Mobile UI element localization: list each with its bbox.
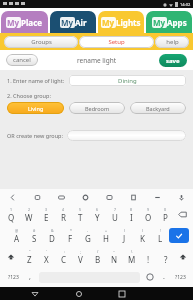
button[interactable]: 8 <box>123 204 140 225</box>
staticText: 4 <box>62 207 65 212</box>
button[interactable]: Setup <box>79 36 154 48</box>
staticText: M <box>128 254 136 265</box>
button[interactable]: Shift <box>174 246 191 267</box>
staticText: Dining <box>118 77 137 85</box>
staticText: B <box>95 254 101 265</box>
staticText: E <box>44 212 49 223</box>
button[interactable]: Comma <box>23 267 37 287</box>
button[interactable]: Settings <box>79 191 91 203</box>
staticText: " <box>29 249 31 254</box>
button[interactable]: 0 <box>157 204 174 225</box>
button[interactable]: ?123 <box>170 267 190 287</box>
staticText: OR create new group: <box>7 132 63 139</box>
button[interactable]: @ <box>8 225 25 246</box>
button[interactable]: Home <box>71 287 87 300</box>
staticText: 3 <box>45 207 48 212</box>
button[interactable]: + <box>97 225 115 246</box>
staticText: 0 <box>164 207 167 212</box>
button[interactable]: - <box>79 225 97 246</box>
button[interactable]: Enter <box>169 228 189 243</box>
staticText: 1. Enter name of light: <box>7 77 65 84</box>
button[interactable]: Back <box>6 191 18 203</box>
staticText: Setup <box>108 38 125 46</box>
button[interactable]: 1 <box>2 204 20 225</box>
staticText: ; <box>80 249 81 254</box>
staticText: 2 <box>28 207 31 212</box>
button[interactable]: More <box>151 191 163 203</box>
staticText: 2. Choose group: <box>7 92 51 99</box>
button[interactable]: 5 <box>72 204 89 225</box>
staticText: \ <box>131 249 133 254</box>
staticText: ~ <box>113 249 116 254</box>
button[interactable]: GIF <box>55 191 67 203</box>
staticText: & <box>51 228 54 233</box>
staticText: * <box>70 228 72 233</box>
staticText: X <box>44 254 49 265</box>
button[interactable]: & <box>43 225 61 246</box>
button[interactable]: 4 <box>55 204 72 225</box>
button[interactable]: 3 <box>38 204 55 225</box>
staticText: O <box>145 212 152 223</box>
button[interactable]: Living <box>7 102 64 114</box>
button[interactable]: 7 <box>106 204 123 225</box>
button[interactable]: Dining <box>69 75 186 86</box>
button[interactable]: cancel <box>6 54 38 66</box>
button[interactable]: Bedroom <box>69 102 125 114</box>
button[interactable]: 6 <box>89 204 106 225</box>
button[interactable]: My <box>98 11 144 33</box>
button[interactable]: Backyard <box>130 102 186 114</box>
button[interactable] <box>2 246 20 267</box>
button[interactable]: 9 <box>140 204 157 225</box>
button[interactable]: My <box>50 11 96 33</box>
staticText: C <box>61 254 67 265</box>
button[interactable]: help <box>155 36 189 48</box>
button[interactable]: My <box>1 11 48 33</box>
button[interactable]: Sticker <box>31 191 43 203</box>
staticText: Z <box>27 254 32 265</box>
button[interactable]: # <box>25 225 43 246</box>
staticText: # <box>33 228 36 233</box>
staticText: 8 <box>130 207 133 212</box>
button[interactable]: \ <box>123 246 140 267</box>
button[interactable] <box>67 130 186 141</box>
staticText: ! <box>147 254 150 265</box>
button[interactable]: save <box>159 54 187 67</box>
staticText: My <box>7 17 20 28</box>
button[interactable]: ~ <box>106 246 123 267</box>
staticText: / <box>97 249 99 254</box>
staticText: ' <box>46 249 47 254</box>
button[interactable]: Translate <box>103 191 115 203</box>
staticText: ?123 <box>175 274 186 281</box>
staticText: ! <box>160 228 161 233</box>
button[interactable]: ! <box>151 225 169 246</box>
button[interactable]: 2 <box>20 204 38 225</box>
button[interactable]: Groups <box>4 36 78 48</box>
staticText: A <box>14 233 20 244</box>
staticText: Apps <box>167 17 187 28</box>
staticText: 1 <box>10 207 13 212</box>
staticText: Groups <box>31 38 52 46</box>
button[interactable]: ? <box>157 246 174 267</box>
button[interactable]: My <box>146 11 192 33</box>
button[interactable]: Recents <box>114 287 130 300</box>
staticText: My <box>61 17 74 28</box>
button[interactable]: Emoji <box>142 267 158 287</box>
button[interactable]: ; <box>72 246 89 267</box>
button[interactable]: Voice input <box>175 191 187 203</box>
button[interactable]: Period <box>158 267 170 287</box>
button[interactable]: ( <box>115 225 133 246</box>
staticText: 9 <box>147 207 150 212</box>
button[interactable]: / <box>89 246 106 267</box>
button[interactable]: Back <box>27 287 43 300</box>
button[interactable]: ! <box>140 246 157 267</box>
button[interactable]: ?123 <box>3 267 23 287</box>
button[interactable]: ) <box>133 225 151 246</box>
button[interactable]: " <box>20 246 38 267</box>
button[interactable]: : <box>55 246 72 267</box>
button[interactable]: Clipboard <box>127 191 139 203</box>
button[interactable]: Backspace <box>174 204 191 225</box>
button[interactable]: ' <box>38 246 55 267</box>
staticText: T <box>78 212 83 223</box>
button[interactable]: * <box>61 225 79 246</box>
